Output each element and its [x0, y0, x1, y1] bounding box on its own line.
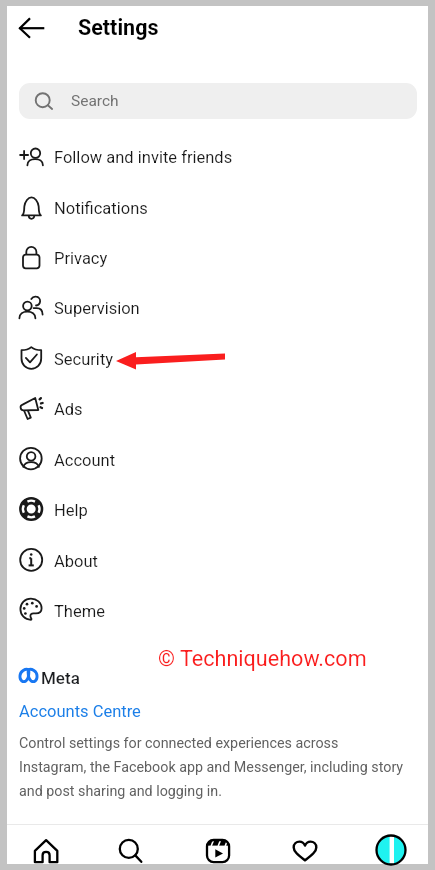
staticText: Notifications	[54, 199, 148, 218]
button[interactable]: Help	[7, 484, 428, 534]
staticText: Search	[71, 92, 119, 110]
staticText: Account	[54, 451, 116, 470]
button[interactable]: Accounts Centre	[19, 702, 141, 721]
button[interactable]: Profile	[368, 827, 414, 870]
staticText: Accounts Centre	[19, 702, 141, 721]
button[interactable]: Search	[19, 83, 417, 119]
staticText: Follow and invite friends	[54, 148, 233, 167]
button[interactable]: Theme	[7, 585, 428, 635]
staticText: Security	[54, 350, 114, 369]
staticText: About	[54, 552, 98, 571]
button[interactable]: Follow and invite friends	[7, 131, 428, 181]
staticText: © Techniquehow.com	[158, 646, 367, 671]
button[interactable]: About	[7, 535, 428, 585]
button[interactable]: Supervision	[7, 282, 428, 332]
button[interactable]: Security	[7, 333, 428, 383]
button[interactable]: Search	[107, 828, 153, 870]
staticText: Supervision	[54, 299, 140, 318]
staticText: Help	[54, 501, 88, 520]
button[interactable]: Reels	[195, 828, 241, 870]
staticText: Theme	[54, 602, 105, 621]
staticText: Privacy	[54, 249, 108, 268]
staticText: Meta	[41, 668, 80, 688]
button[interactable]: Notifications	[7, 182, 428, 232]
button[interactable]: Account	[7, 434, 428, 484]
button[interactable]: Likes	[282, 828, 328, 870]
button[interactable]: Back	[7, 6, 53, 52]
button[interactable]: Privacy	[7, 232, 428, 282]
staticText: Settings	[78, 15, 159, 40]
button[interactable]: Home	[23, 828, 69, 870]
button[interactable]: Ads	[7, 383, 428, 433]
staticText: Control settings for connected experienc…	[19, 735, 409, 799]
staticText: Ads	[54, 400, 83, 419]
